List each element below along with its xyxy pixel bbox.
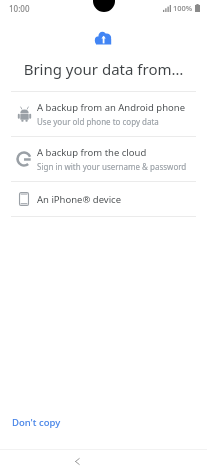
button[interactable]: Don't copy bbox=[0, 410, 73, 435]
staticText: A backup from the cloud bbox=[37, 146, 147, 159]
staticText: 10:00 bbox=[9, 3, 30, 14]
button[interactable]: An iPhone® device bbox=[0, 182, 207, 216]
button[interactable]: Back bbox=[66, 450, 88, 472]
staticText: An iPhone® device bbox=[37, 193, 122, 206]
staticText: Sign in with your username & password bbox=[37, 161, 187, 172]
button[interactable]: A backup from an Android phone bbox=[0, 92, 207, 136]
button[interactable]: A backup from the cloud bbox=[0, 137, 207, 181]
staticText: Bring your data from… bbox=[0, 59, 207, 79]
staticText: A backup from an Android phone bbox=[37, 101, 186, 114]
staticText: Use your old phone to copy data wireless… bbox=[37, 116, 196, 127]
staticText: Don't copy bbox=[12, 416, 61, 429]
staticText: 100% bbox=[173, 3, 193, 13]
